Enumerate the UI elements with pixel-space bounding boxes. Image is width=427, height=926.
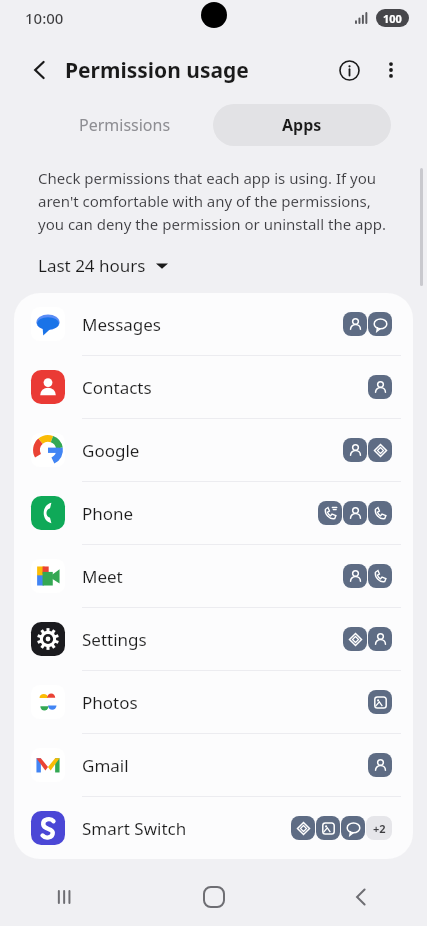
staticText: Permission usage — [65, 56, 249, 85]
staticText: Meet — [82, 565, 343, 588]
button[interactable]: Home — [188, 871, 240, 923]
button[interactable]: Back — [22, 52, 58, 88]
button[interactable]: Apps — [213, 104, 391, 146]
staticText: Photos — [82, 691, 368, 714]
button[interactable]: Photos — [14, 671, 413, 733]
staticText: Phone — [82, 502, 318, 525]
button[interactable]: Smart Switch — [14, 797, 413, 859]
staticText: Messages — [82, 313, 343, 336]
button[interactable]: More options — [373, 52, 409, 88]
button[interactable]: Messages — [14, 293, 413, 355]
button[interactable]: Contacts — [14, 356, 413, 418]
button[interactable]: Gmail — [14, 734, 413, 796]
staticText: +2 — [373, 821, 386, 836]
staticText: Permissions — [79, 114, 171, 136]
button[interactable]: Phone — [14, 482, 413, 544]
button[interactable]: Google — [14, 419, 413, 481]
button[interactable]: Settings — [14, 608, 413, 670]
button[interactable]: Permissions — [36, 104, 213, 146]
staticText: Smart Switch — [82, 817, 291, 840]
button[interactable]: Recent apps — [40, 871, 92, 923]
button[interactable]: Back — [335, 871, 387, 923]
staticText: 10:00 — [25, 8, 64, 28]
staticText: Check permissions that each app is using… — [38, 168, 386, 234]
button[interactable]: Last 24 hours — [38, 254, 168, 277]
staticText: Google — [82, 439, 343, 462]
staticText: Settings — [82, 628, 343, 651]
staticText: Contacts — [82, 376, 368, 399]
staticText: Last 24 hours — [38, 254, 146, 277]
staticText: 100 — [383, 11, 402, 26]
staticText: Gmail — [82, 754, 368, 777]
staticText: Apps — [282, 114, 322, 136]
button[interactable]: Information — [331, 52, 367, 88]
button[interactable]: Meet — [14, 545, 413, 607]
